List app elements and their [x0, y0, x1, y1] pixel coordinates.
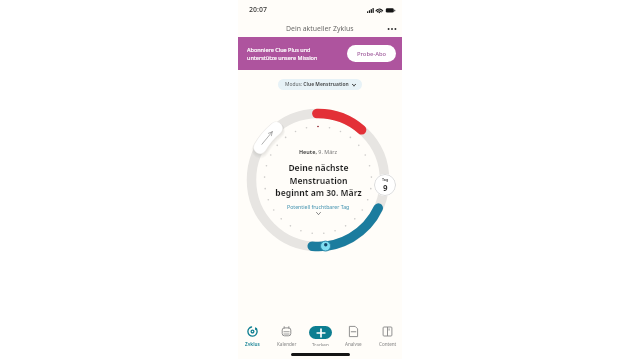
- staticText: Kalender: [277, 341, 297, 346]
- button[interactable]: Tracken: [306, 318, 335, 346]
- button[interactable]: Tag: [374, 174, 396, 196]
- staticText: Zyklus: [245, 341, 260, 346]
- staticText: 20:07: [249, 5, 267, 15]
- staticText: Content: [379, 341, 397, 346]
- staticText: Heute, 9. März: [299, 148, 337, 155]
- button[interactable]: Content: [373, 318, 402, 346]
- button[interactable]: More options: [385, 22, 399, 36]
- button[interactable]: Abonniere Clue Plus und unterstütze unse…: [238, 37, 402, 70]
- staticText: 9: [383, 182, 388, 193]
- staticText: Analyse: [345, 341, 362, 346]
- button[interactable]: Kalender: [272, 318, 301, 346]
- button[interactable]: Probe-Abo: [347, 45, 396, 62]
- staticText: Abonniere Clue Plus und unterstütze unse…: [247, 46, 347, 62]
- staticText: Dein aktueller Zyklus: [286, 24, 354, 33]
- staticText: Potentiell fruchtbarer Tag: [287, 203, 350, 210]
- button[interactable]: Zyklus: [238, 318, 267, 346]
- button[interactable]: Analyse: [339, 318, 368, 346]
- staticText: Probe-Abo: [357, 50, 387, 58]
- staticText: Tracken: [312, 342, 329, 346]
- staticText: Deine nächste Menstruation beginnt am 30…: [275, 162, 362, 198]
- staticText: Modus: Clue Menstruation: [285, 81, 349, 88]
- button[interactable]: Modus: Clue Menstruation: [278, 79, 362, 90]
- staticText: Tag: [382, 177, 389, 182]
